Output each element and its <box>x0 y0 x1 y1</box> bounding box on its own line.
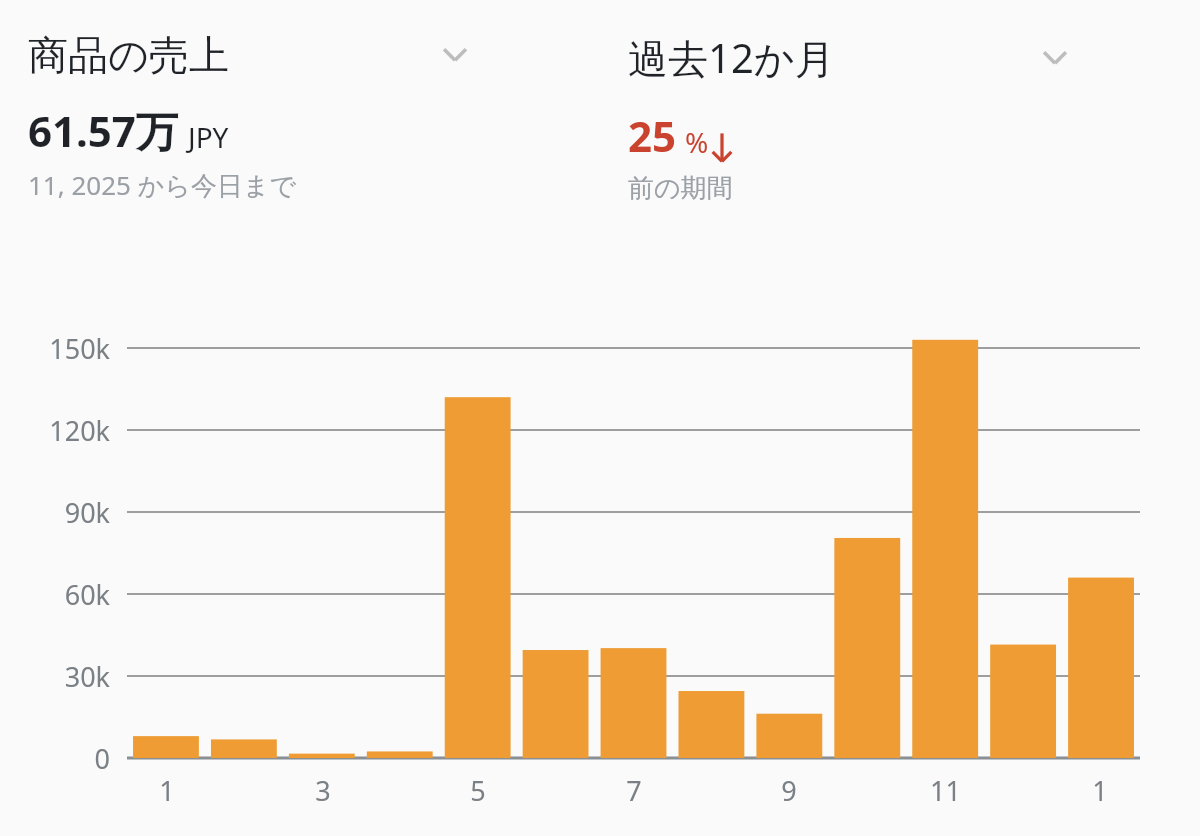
staticText: 150k <box>49 330 110 367</box>
staticText: 商品の売上 <box>28 30 229 80</box>
staticText: 11, 2025 から今日まで <box>28 167 297 203</box>
staticText: 0 <box>94 740 110 777</box>
staticText: 60k <box>64 576 110 613</box>
staticText: % <box>685 123 709 161</box>
staticText: 90k <box>64 494 110 531</box>
staticText: 9 <box>781 772 797 809</box>
staticText: 11 <box>930 772 961 809</box>
staticText: 25 <box>628 107 677 164</box>
staticText: 61.57万 <box>28 102 178 159</box>
staticText: 1 <box>159 772 175 809</box>
button[interactable]: 商品の売上 <box>28 30 476 203</box>
staticText: 7 <box>626 772 642 809</box>
button[interactable]: 過去12か月 <box>628 30 1076 205</box>
staticText: 前の期間 <box>628 172 733 205</box>
staticText: 過去12か月 <box>628 30 835 85</box>
staticText: 5 <box>470 772 486 809</box>
staticText: JPY <box>188 118 229 156</box>
other: 指標を選択 <box>434 34 476 76</box>
other: 期間を選択 <box>1034 37 1076 79</box>
staticText: 1 <box>1092 772 1108 809</box>
other: 減少 <box>709 130 735 164</box>
staticText: 120k <box>49 412 110 449</box>
staticText: 3 <box>315 772 331 809</box>
staticText: 30k <box>64 658 110 695</box>
